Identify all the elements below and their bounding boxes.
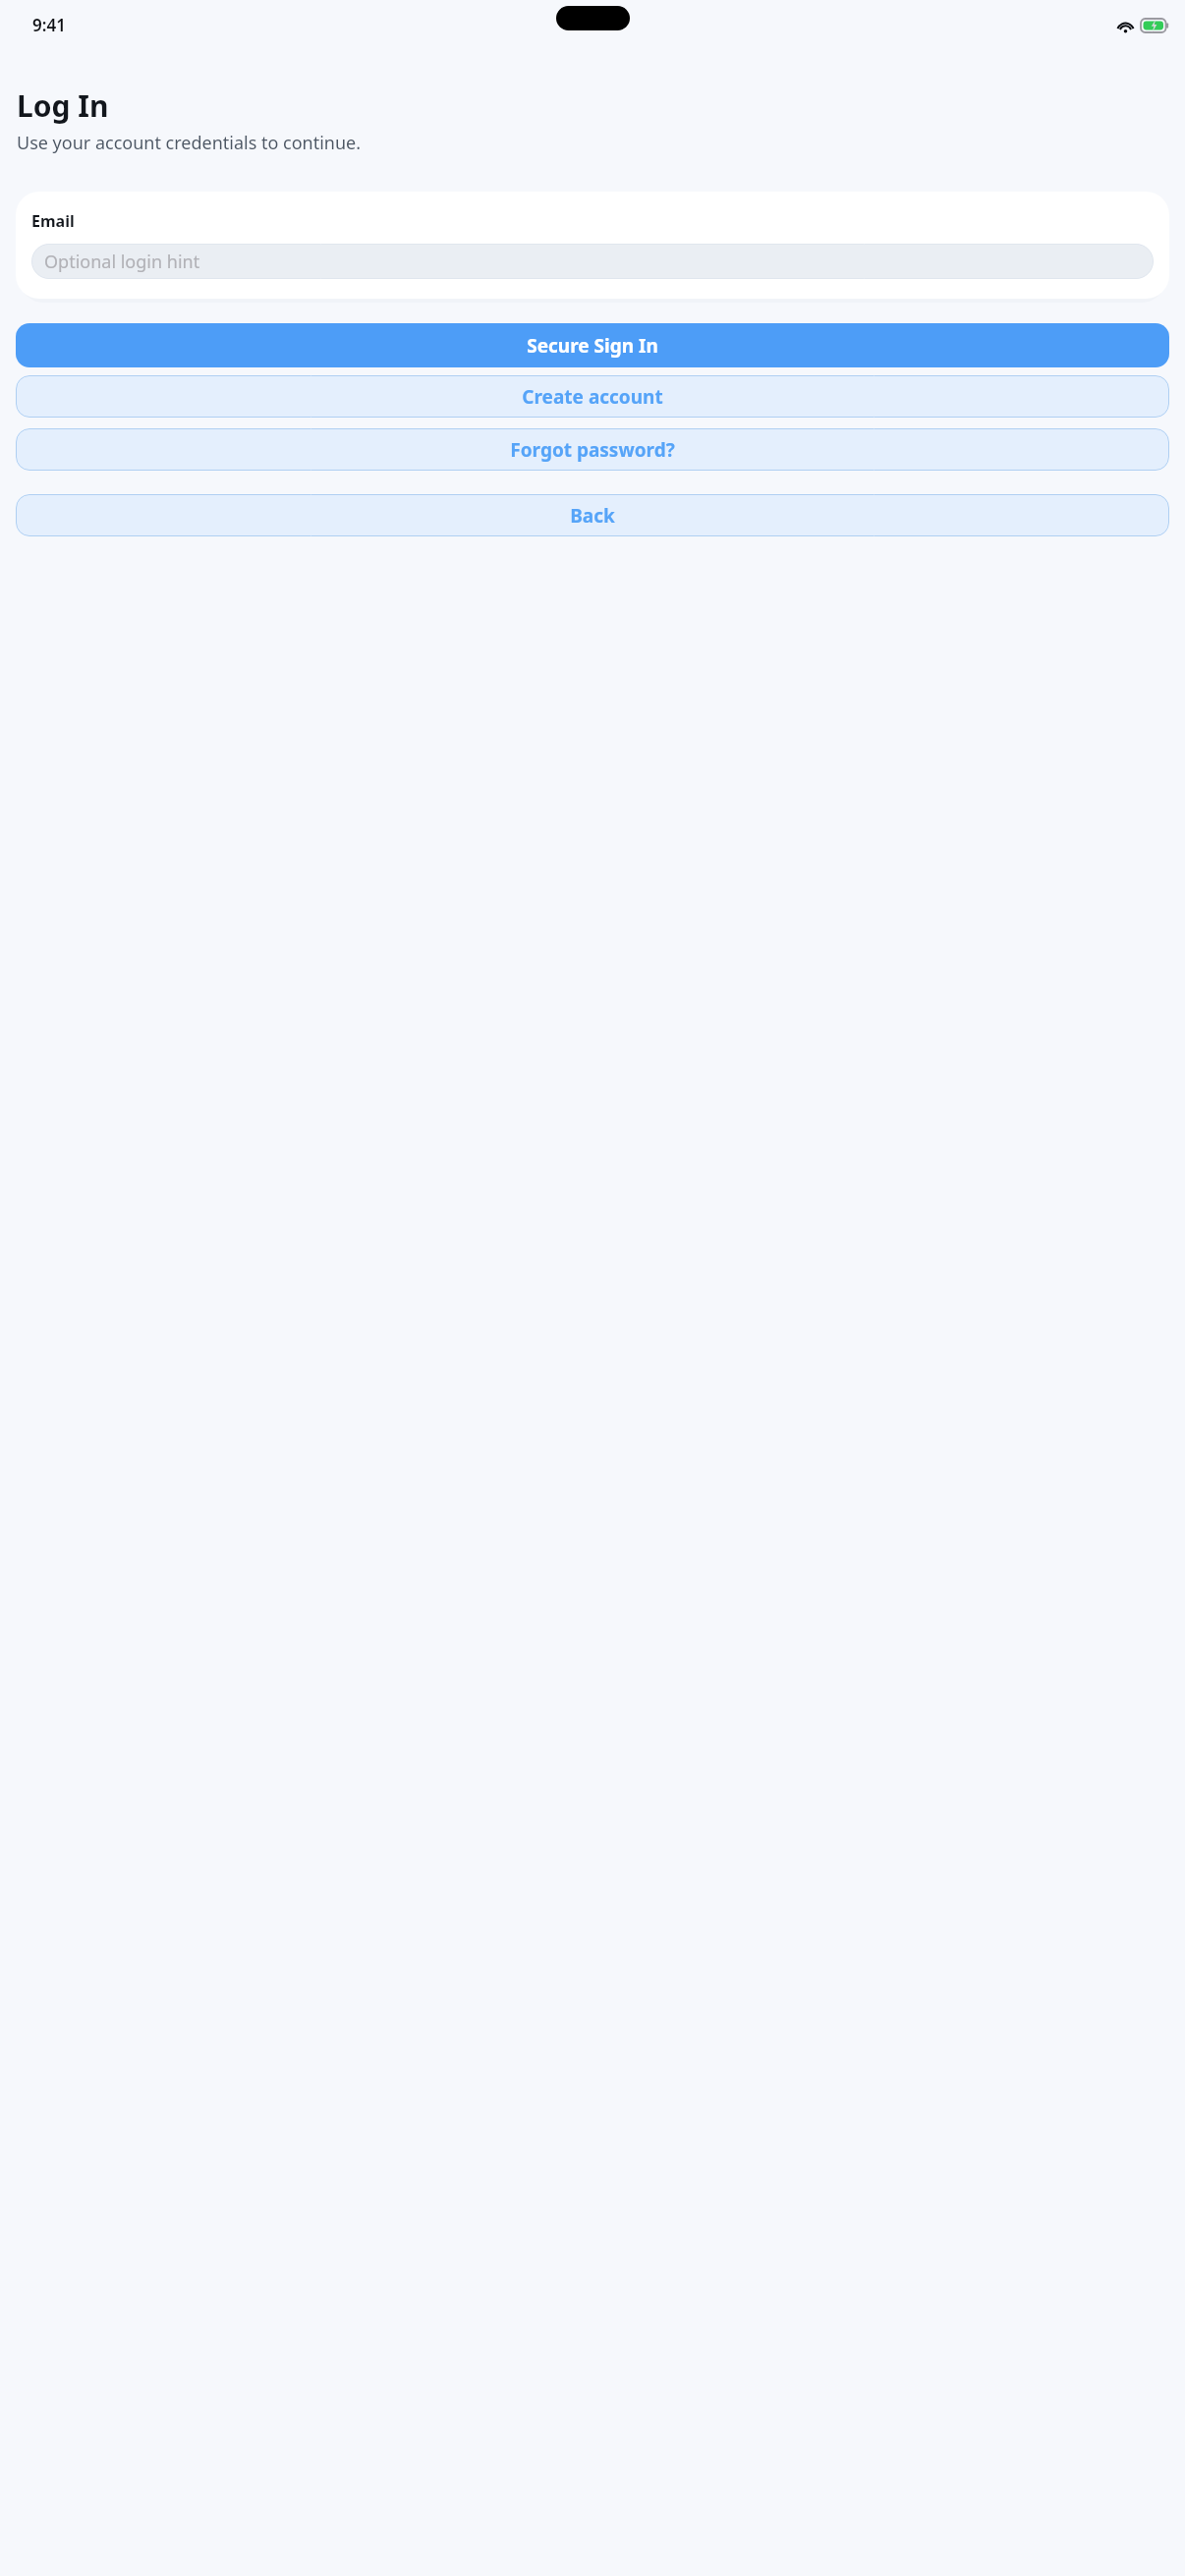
- button[interactable]: Secure Sign In: [16, 323, 1169, 367]
- staticText: Use your account credentials to continue…: [17, 131, 362, 155]
- button[interactable]: Create account: [16, 375, 1169, 418]
- button[interactable]: Optional login hint: [31, 244, 1154, 279]
- staticText: Create account: [522, 384, 663, 410]
- staticText: Forgot password?: [510, 437, 675, 463]
- staticText: Back: [570, 503, 615, 529]
- staticText: Log In: [17, 85, 109, 126]
- staticText: Email: [31, 210, 75, 232]
- staticText: Secure Sign In: [527, 333, 658, 359]
- staticText: Optional login hint: [44, 250, 200, 274]
- button[interactable]: Forgot password?: [16, 428, 1169, 471]
- staticText: 9:41: [32, 14, 66, 36]
- button[interactable]: Back: [16, 494, 1169, 536]
